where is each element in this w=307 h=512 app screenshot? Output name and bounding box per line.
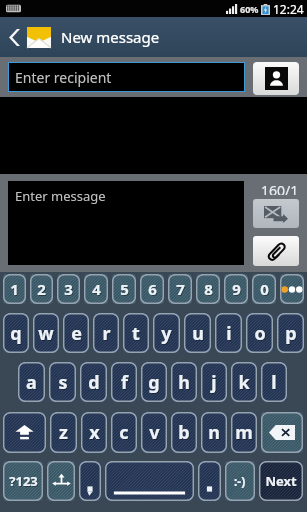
staticText: f xyxy=(121,370,128,395)
button[interactable]: z xyxy=(50,412,77,453)
button[interactable]: o xyxy=(246,313,273,353)
staticText: h xyxy=(178,370,190,395)
staticText: Enter message xyxy=(15,187,106,205)
staticText: 8 xyxy=(204,279,213,299)
staticText: l xyxy=(272,371,278,396)
button[interactable] xyxy=(261,412,303,453)
button[interactable]: s xyxy=(49,362,76,402)
staticText: t xyxy=(133,322,141,347)
button[interactable] xyxy=(105,461,194,501)
button[interactable]: i xyxy=(215,313,242,353)
staticText: ?123 xyxy=(9,472,38,490)
button[interactable]: q xyxy=(3,313,29,353)
button[interactable]: Enter message xyxy=(8,181,244,265)
button[interactable]: 2 xyxy=(30,274,53,304)
button[interactable]: g xyxy=(141,362,167,402)
button[interactable] xyxy=(79,461,101,501)
button[interactable]: 0 xyxy=(252,274,276,304)
staticText: d xyxy=(88,370,100,395)
button[interactable]: Next xyxy=(259,461,303,501)
staticText: m xyxy=(236,421,254,446)
button[interactable]: 4 xyxy=(84,274,108,304)
staticText: h xyxy=(179,371,191,396)
staticText: f xyxy=(122,371,129,396)
staticText: k xyxy=(238,370,250,395)
button[interactable]: :-) xyxy=(225,461,255,501)
staticText: 9 xyxy=(233,280,242,300)
button[interactable]: Enter recipient xyxy=(8,62,245,92)
staticText: y xyxy=(162,322,173,347)
staticText: p xyxy=(285,321,297,346)
button[interactable]: Back xyxy=(1,17,27,57)
staticText: z xyxy=(60,421,69,446)
staticText: w xyxy=(38,321,54,346)
staticText: Enter recipient xyxy=(15,68,112,87)
button[interactable]: r xyxy=(93,313,119,353)
staticText: o xyxy=(254,321,266,346)
staticText: 60% xyxy=(240,3,259,15)
staticText: y xyxy=(161,321,172,346)
button[interactable]: 8 xyxy=(196,274,220,304)
staticText: n xyxy=(209,421,221,446)
staticText: 2 xyxy=(38,280,47,300)
button[interactable]: 3 xyxy=(57,274,80,304)
staticText: New message xyxy=(61,27,160,47)
button[interactable]: k xyxy=(231,362,257,402)
staticText: 7 xyxy=(176,279,185,299)
staticText: w xyxy=(39,322,55,347)
button[interactable]: n xyxy=(201,412,227,453)
button[interactable]: v xyxy=(141,412,167,453)
staticText: l xyxy=(271,370,277,395)
button[interactable]: e xyxy=(63,313,89,353)
staticText: 1 xyxy=(10,279,19,299)
button[interactable]: w xyxy=(33,313,59,353)
button[interactable]: p xyxy=(277,313,304,353)
staticText: j xyxy=(211,370,217,395)
button[interactable]: 6 xyxy=(140,274,164,304)
button[interactable]: 5 xyxy=(112,274,136,304)
button[interactable]: t xyxy=(123,313,149,353)
button[interactable]: a xyxy=(18,362,45,402)
button[interactable]: 1 xyxy=(3,274,26,304)
button[interactable] xyxy=(3,412,46,453)
staticText: i xyxy=(226,321,232,346)
button[interactable]: j xyxy=(201,362,227,402)
staticText: 7 xyxy=(177,280,186,300)
button[interactable] xyxy=(280,274,304,304)
button[interactable]: y xyxy=(153,313,180,353)
staticText: 160/1 xyxy=(261,181,299,195)
staticText: o xyxy=(255,322,267,347)
staticText: u xyxy=(192,321,204,346)
staticText: q xyxy=(10,321,22,346)
button[interactable]: Choose contact xyxy=(253,62,299,95)
button[interactable]: ?123 xyxy=(3,461,43,501)
button[interactable]: f xyxy=(111,362,137,402)
staticText: 2 xyxy=(37,279,46,299)
staticText: d xyxy=(89,371,101,396)
staticText: 1 xyxy=(11,280,20,300)
staticText: a xyxy=(27,371,38,396)
button[interactable]: c xyxy=(111,412,137,453)
button[interactable]: h xyxy=(171,362,197,402)
button[interactable]: u xyxy=(184,313,211,353)
staticText: 5 xyxy=(121,280,130,300)
staticText: e xyxy=(72,322,83,347)
button[interactable]: m xyxy=(231,412,257,453)
button[interactable] xyxy=(47,461,75,501)
staticText: 9 xyxy=(232,279,241,299)
staticText: g xyxy=(148,370,160,395)
button[interactable]: 9 xyxy=(224,274,248,304)
staticText: i xyxy=(227,322,233,347)
button[interactable] xyxy=(198,461,221,501)
staticText: z xyxy=(59,420,68,445)
button[interactable]: Attach xyxy=(253,236,299,266)
button[interactable]: 7 xyxy=(168,274,192,304)
button[interactable]: Send xyxy=(253,199,299,228)
button[interactable]: b xyxy=(171,412,197,453)
button[interactable]: x xyxy=(81,412,107,453)
staticText: 6 xyxy=(148,279,157,299)
button[interactable]: d xyxy=(80,362,107,402)
button[interactable]: l xyxy=(261,362,287,402)
staticText: c xyxy=(119,420,129,445)
staticText: s xyxy=(58,370,68,395)
